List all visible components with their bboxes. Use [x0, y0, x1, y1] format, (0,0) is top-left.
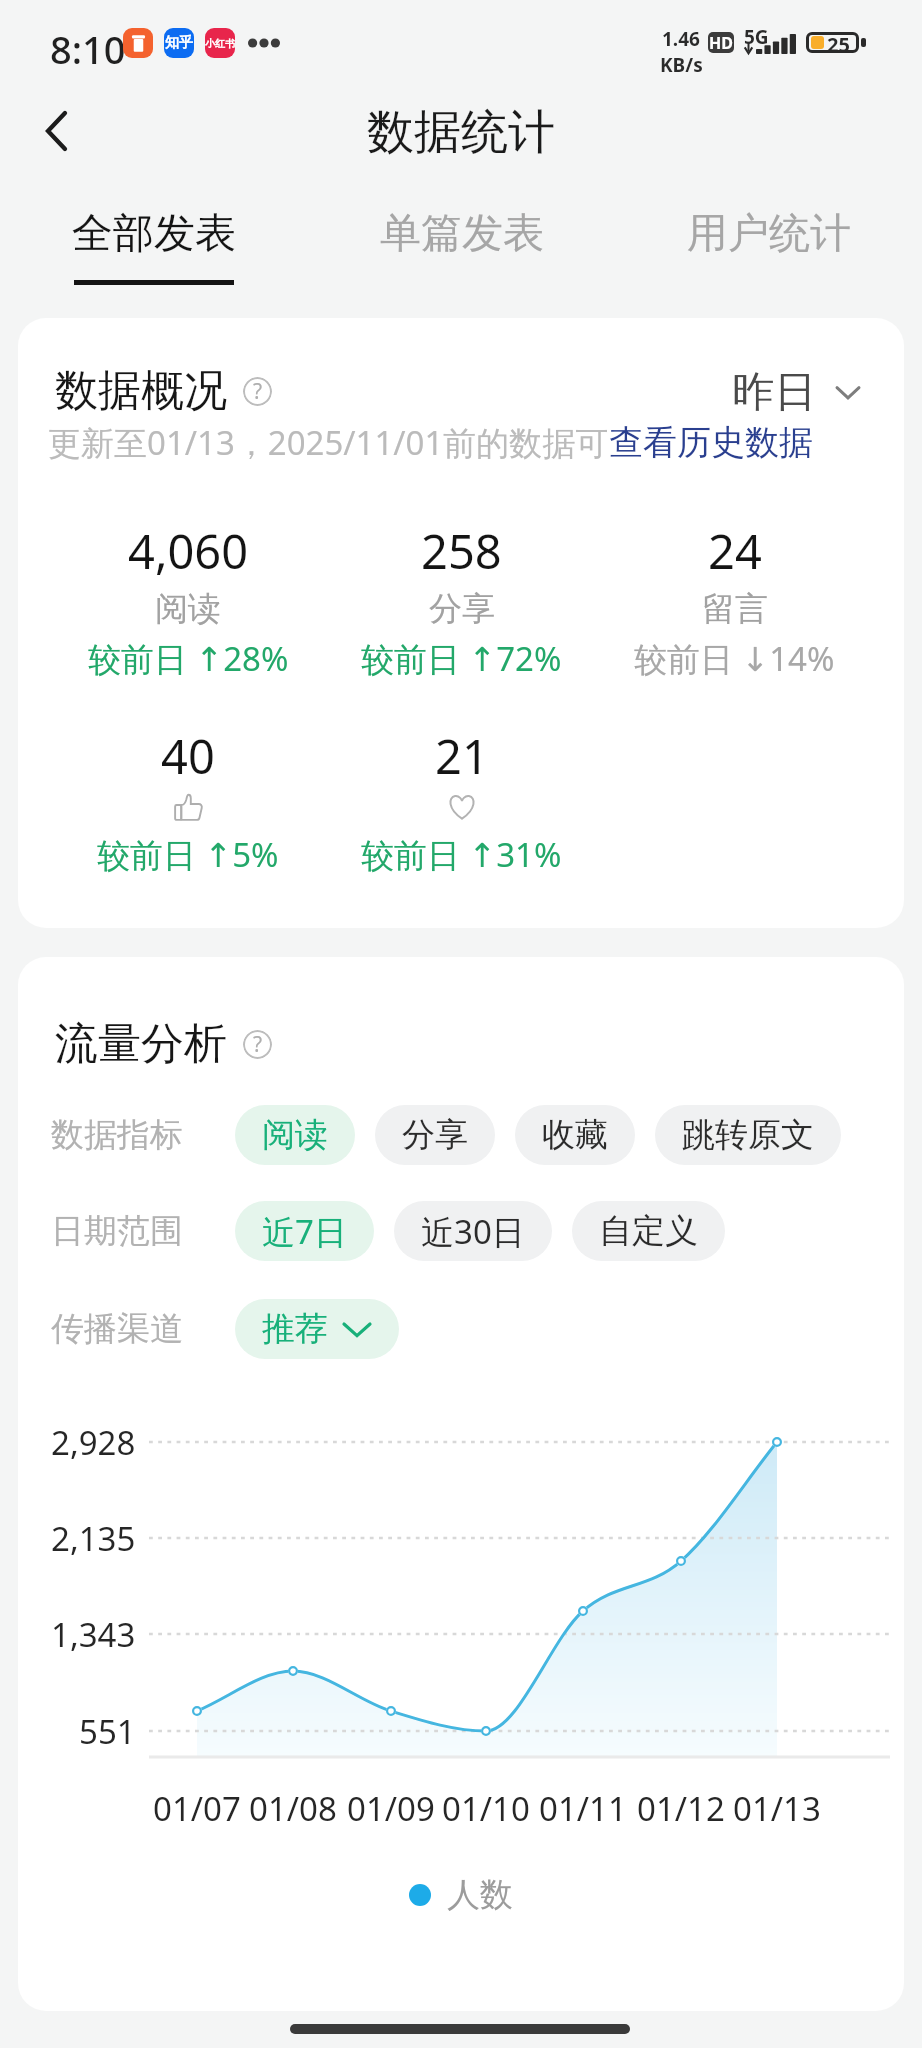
button[interactable]: 21: [325, 724, 598, 877]
button[interactable]: 40: [51, 724, 325, 877]
staticText: 24: [708, 519, 762, 583]
staticText: 自定义: [599, 1210, 698, 1252]
staticText: 小红书: [205, 37, 235, 50]
staticText: 5G: [744, 24, 769, 50]
staticText: 40: [161, 724, 215, 788]
button[interactable]: 用户统计: [615, 208, 922, 298]
staticText: 数据统计: [367, 103, 555, 162]
staticText: 阅读: [155, 588, 221, 630]
button[interactable]: 收藏: [515, 1105, 635, 1165]
button[interactable]: 258: [325, 519, 598, 681]
button[interactable]: 查看历史数据: [609, 421, 813, 464]
staticText: 推荐: [262, 1308, 328, 1350]
staticText: 01/08: [249, 1786, 337, 1831]
staticText: 收藏: [542, 1114, 608, 1156]
button[interactable]: Back: [10, 85, 102, 177]
staticText: 跳转原文: [682, 1114, 814, 1156]
button[interactable]: 阅读: [235, 1105, 355, 1165]
staticText: 2,135: [51, 1516, 136, 1560]
button[interactable]: Help: [243, 1030, 272, 1059]
staticText: 昨日: [732, 366, 816, 419]
staticText: 分享: [429, 588, 495, 630]
button[interactable]: 4,060: [51, 519, 325, 681]
staticText: 1.46: [662, 26, 700, 52]
staticText: 人数: [447, 1874, 513, 1916]
staticText: 01/10: [442, 1786, 530, 1831]
staticText: 阅读: [262, 1114, 328, 1156]
button[interactable]: 近30日: [394, 1201, 552, 1261]
button[interactable]: Help: [243, 377, 272, 406]
staticText: 更新至01/13，2025/11/01前的数据可: [48, 420, 609, 465]
staticText: 留言: [702, 588, 768, 630]
staticText: 01/11: [539, 1786, 627, 1831]
staticText: 01/09: [347, 1786, 435, 1831]
button[interactable]: 自定义: [572, 1201, 725, 1261]
button[interactable]: 跳转原文: [655, 1105, 841, 1165]
staticText: 日期范围: [51, 1210, 183, 1252]
staticText: 近7日: [262, 1209, 347, 1254]
staticText: ?: [253, 1030, 263, 1059]
staticText: 较前日 ↓14%: [634, 636, 835, 681]
staticText: 258: [421, 519, 502, 583]
staticText: 551: [79, 1709, 136, 1753]
staticText: 知乎: [165, 34, 193, 52]
staticText: 01/07: [153, 1786, 241, 1831]
button[interactable]: 分享: [375, 1105, 495, 1165]
staticText: 单篇发表: [380, 208, 544, 260]
staticText: 用户统计: [687, 208, 851, 260]
staticText: 21: [435, 724, 489, 788]
staticText: 全部发表: [72, 208, 236, 260]
button[interactable]: 24: [598, 519, 871, 681]
staticText: 分享: [402, 1114, 468, 1156]
staticText: 流量分析: [55, 1017, 227, 1071]
staticText: HD: [709, 32, 733, 53]
staticText: 较前日 ↑31%: [361, 832, 562, 877]
staticText: ?: [253, 377, 263, 406]
button[interactable]: 昨日: [732, 366, 861, 419]
staticText: 传播渠道: [51, 1308, 183, 1350]
staticText: 较前日 ↑72%: [361, 636, 562, 681]
staticText: 2,928: [51, 1420, 136, 1464]
staticText: 1,343: [51, 1612, 136, 1656]
button[interactable]: 单篇发表: [308, 208, 615, 298]
staticText: 较前日 ↑5%: [97, 832, 279, 877]
staticText: 较前日 ↑28%: [88, 636, 289, 681]
button[interactable]: 全部发表: [0, 208, 308, 298]
button[interactable]: 推荐: [235, 1299, 399, 1359]
staticText: 近30日: [421, 1209, 525, 1254]
staticText: 01/12: [637, 1786, 725, 1831]
button[interactable]: 近7日: [235, 1201, 374, 1261]
staticText: 01/13: [733, 1786, 821, 1831]
staticText: 数据指标: [51, 1114, 183, 1156]
staticText: 25: [827, 31, 850, 54]
staticText: KB/s: [660, 52, 703, 78]
staticText: 8:10: [50, 23, 126, 75]
staticText: 数据概况: [55, 364, 227, 418]
staticText: 4,060: [128, 519, 249, 583]
